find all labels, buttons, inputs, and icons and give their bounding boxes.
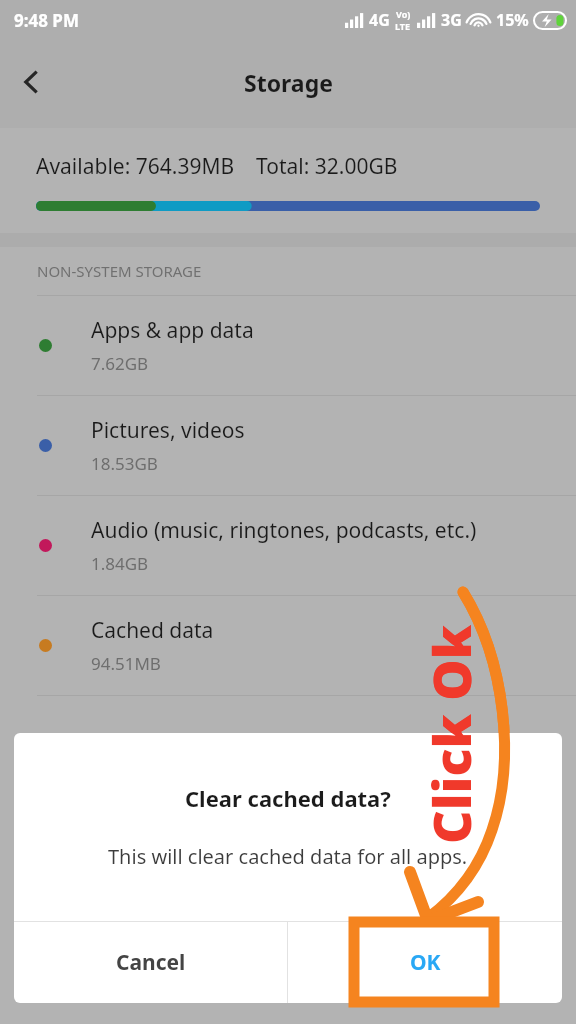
button[interactable]: Audio (music, ringtones, podcasts, etc.) xyxy=(0,496,576,595)
button[interactable]: Cancel xyxy=(14,922,287,1003)
staticText: Vo) xyxy=(396,8,411,20)
staticText: Other files xyxy=(91,731,194,760)
staticText: OK xyxy=(410,948,441,977)
staticText: Audio (music, ringtones, podcasts, etc.) xyxy=(91,516,477,545)
staticText: 9:48 PM xyxy=(14,9,79,32)
staticText: LTE xyxy=(395,20,411,32)
staticText: Storage xyxy=(244,67,333,98)
staticText: Clear cached data? xyxy=(185,783,391,813)
staticText: Pictures, videos xyxy=(91,416,245,445)
button[interactable]: Apps & app data xyxy=(0,296,576,395)
staticText: This will clear cached data for all apps… xyxy=(108,843,468,870)
button[interactable]: Cached data xyxy=(0,596,576,695)
staticText: Click Ok xyxy=(415,625,486,844)
staticText: 4G xyxy=(369,9,390,31)
staticText: 15% xyxy=(496,9,529,31)
staticText: NON-SYSTEM STORAGE xyxy=(37,261,202,281)
staticText: 18.53GB xyxy=(91,452,158,475)
button[interactable]: Pictures, videos xyxy=(0,396,576,495)
staticText: Available: 764.39MB Total: 32.00GB xyxy=(36,152,398,181)
staticText: 3G xyxy=(441,9,462,31)
staticText: Cancel xyxy=(116,948,186,977)
button[interactable]: Back xyxy=(0,50,64,114)
button[interactable]: OK xyxy=(288,922,562,1003)
staticText: 94.51MB xyxy=(91,652,161,675)
staticText: 1.84GB xyxy=(91,552,149,575)
staticText: Apps & app data xyxy=(91,316,254,345)
staticText: 7.62GB xyxy=(91,352,149,375)
staticText: Cached data xyxy=(91,616,214,645)
button[interactable]: Other files xyxy=(0,696,576,795)
staticText: Click Ok xyxy=(415,625,486,844)
